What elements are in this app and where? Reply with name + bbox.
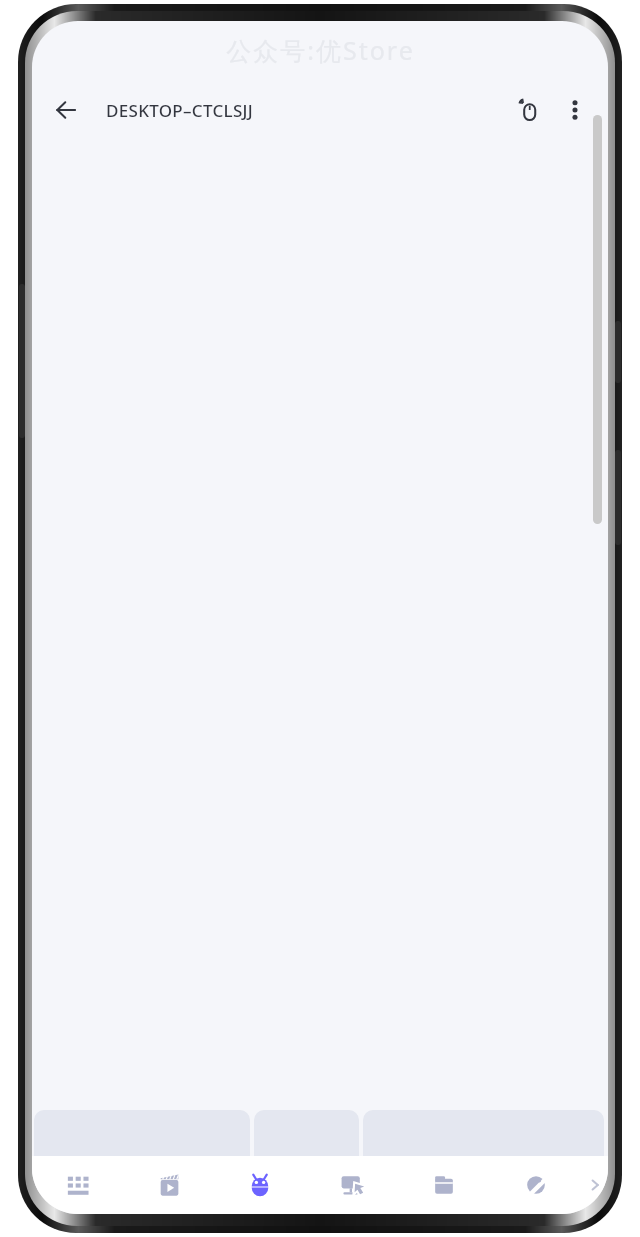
- button[interactable]: Back: [42, 86, 90, 134]
- button[interactable]: Media: [123, 1156, 214, 1214]
- button[interactable]: Files: [398, 1156, 490, 1214]
- button[interactable]: Android: [214, 1156, 306, 1214]
- button[interactable]: Remote desktop: [306, 1156, 398, 1214]
- button[interactable]: More options: [552, 87, 598, 133]
- button[interactable]: More: [582, 1156, 608, 1214]
- button[interactable]: Mouse: [506, 87, 552, 133]
- staticText: 公众号:优Store: [226, 33, 415, 67]
- staticText: DESKTOP–CTCLSJJ: [106, 99, 253, 122]
- button[interactable]: Browser: [490, 1156, 582, 1214]
- button[interactable]: Keyboard: [32, 1156, 123, 1214]
